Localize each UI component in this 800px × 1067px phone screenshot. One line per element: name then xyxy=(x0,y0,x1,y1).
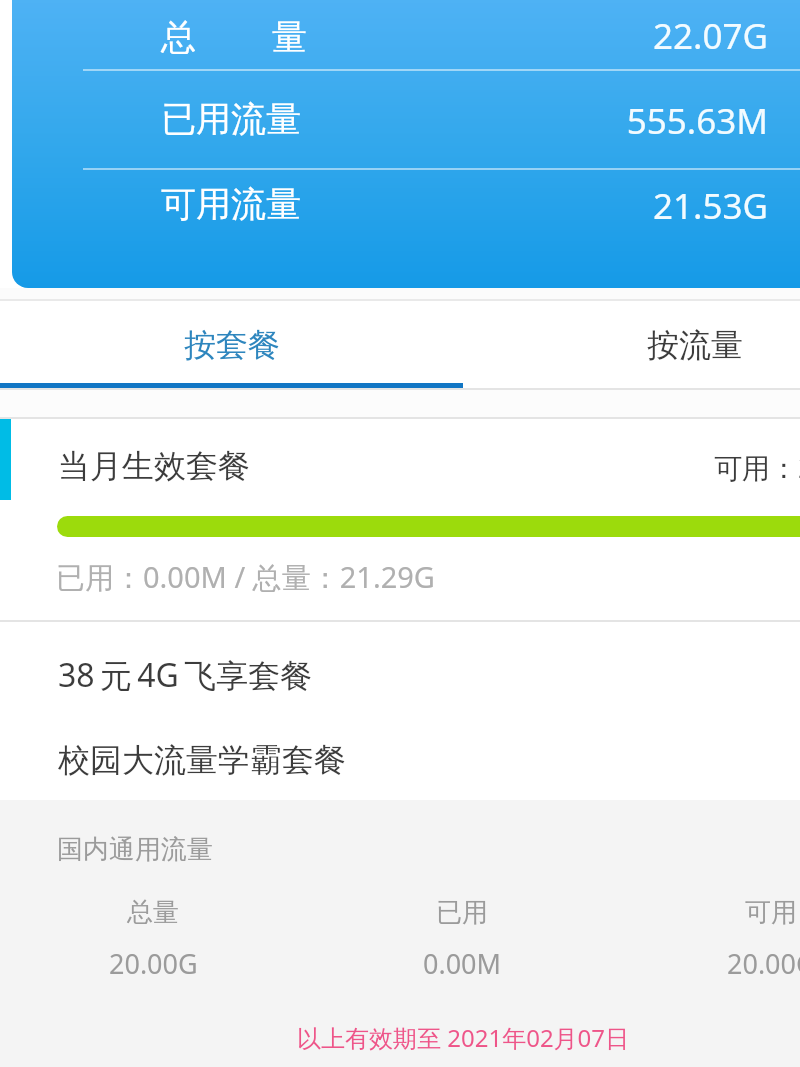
staticText: 按套餐 xyxy=(184,325,280,365)
staticText: 当月生效套餐 xyxy=(58,446,250,486)
button[interactable]: 按套餐 xyxy=(0,301,463,388)
staticText: 22.07G xyxy=(412,12,768,60)
staticText: 20.00G xyxy=(109,945,198,982)
staticText: 已用：0.00M / 总量：21.29G xyxy=(56,557,435,597)
staticText: 校园大流量学霸套餐 xyxy=(58,740,346,780)
staticText: 总量 xyxy=(127,896,179,929)
staticText: 总 量 xyxy=(161,12,307,60)
staticText: 已用 xyxy=(436,896,488,929)
staticText: 以上有效期至 2021年02月07日 xyxy=(297,1021,630,1054)
staticText: 可用 xyxy=(745,896,797,929)
staticText: 555.63M xyxy=(412,97,768,145)
staticText: 已用流量 xyxy=(161,97,301,141)
button[interactable]: 校园大流量学霸套餐 xyxy=(0,708,800,794)
staticText: 国内通用流量 xyxy=(57,833,213,866)
staticText: 可用流量 xyxy=(161,182,301,226)
button[interactable]: 当前生效标记 xyxy=(0,419,800,620)
button[interactable]: 按流量 xyxy=(463,301,800,388)
staticText: 38 元 4G 飞享套餐 xyxy=(58,653,313,697)
staticText: 按流量 xyxy=(647,325,743,365)
staticText: 可用：20.00G xyxy=(714,448,800,486)
button[interactable]: 38 元 4G 飞享套餐 xyxy=(0,622,800,708)
staticText: 20.00G xyxy=(727,945,800,982)
staticText: 0.00M xyxy=(423,945,502,982)
staticText: 21.53G xyxy=(412,182,768,230)
